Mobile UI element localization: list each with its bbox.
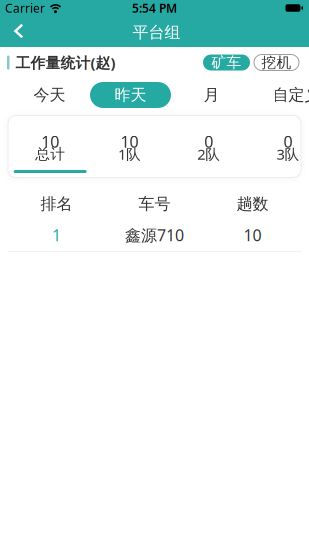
staticText: 矿车 [211, 53, 241, 71]
staticText: 车号 [138, 194, 170, 214]
staticText: 鑫源710 [125, 224, 184, 246]
staticText: 3队 [276, 144, 299, 164]
staticText: 平台组 [132, 23, 180, 42]
button[interactable]: Back [0, 20, 33, 45]
staticText: 趟数 [236, 194, 268, 214]
button[interactable]: 矿车 [203, 54, 250, 70]
button[interactable]: 1 [7, 211, 301, 242]
button[interactable]: 10 [10, 115, 90, 178]
staticText: 1队 [118, 144, 141, 164]
button[interactable]: 今天 [9, 82, 90, 108]
staticText: 今天 [33, 85, 65, 105]
staticText: 10 [120, 131, 138, 152]
button[interactable]: 自定义 [256, 82, 309, 108]
staticText: 2队 [197, 144, 220, 164]
button[interactable]: 0 [248, 115, 309, 178]
staticText: 1 [52, 224, 61, 246]
staticText: 工作量统计(赵) [15, 53, 115, 72]
staticText: 自定义 [272, 85, 309, 105]
button[interactable]: 挖机 [254, 54, 299, 70]
staticText: 5:54 PM [132, 0, 177, 16]
staticText: 10 [41, 131, 59, 152]
staticText: 10 [243, 224, 261, 246]
staticText: 月 [203, 85, 219, 105]
button[interactable]: 0 [169, 115, 248, 178]
button[interactable]: 10 [90, 115, 169, 178]
staticText: 0 [204, 131, 213, 152]
staticText: 总计 [35, 145, 65, 163]
staticText: 挖机 [261, 53, 291, 71]
button[interactable]: 昨天 [90, 82, 171, 108]
staticText: 昨天 [114, 85, 146, 105]
staticText: 0 [283, 131, 292, 152]
staticText: Carrier [5, 0, 45, 16]
staticText: 排名 [40, 194, 72, 214]
button[interactable]: 月 [171, 82, 252, 108]
